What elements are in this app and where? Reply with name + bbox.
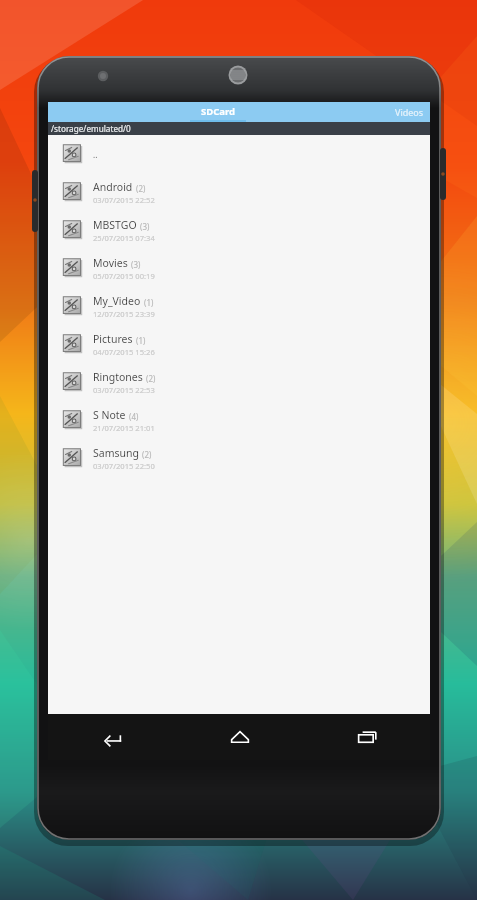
staticText: Samsung [93, 446, 139, 460]
staticText: My_Video [93, 294, 141, 308]
other: Folder [62, 181, 84, 203]
staticText: Pictures [93, 332, 133, 346]
button[interactable]: Folder [48, 211, 430, 249]
other: Folder [62, 295, 84, 317]
other: Folder [62, 371, 84, 393]
staticText: (2) [136, 183, 146, 194]
staticText: SDCard [201, 105, 236, 118]
staticText: (1) [136, 335, 146, 346]
other: Folder [62, 143, 84, 165]
button[interactable]: Home [176, 714, 303, 760]
button[interactable]: Folder [48, 135, 430, 173]
other: Folder [62, 333, 84, 355]
staticText: 25/07/2015 07:34 [93, 233, 155, 243]
staticText: Android [93, 180, 133, 194]
staticText: (4) [129, 411, 139, 422]
staticText: (2) [142, 449, 152, 460]
staticText: /storage/emulated/0 [51, 123, 131, 134]
staticText: 03/07/2015 22:53 [93, 385, 155, 395]
button[interactable]: Folder [48, 249, 430, 287]
button[interactable]: Folder [48, 325, 430, 363]
staticText: Movies [93, 256, 128, 270]
staticText: Ringtones [93, 370, 143, 384]
button[interactable]: Folder [48, 287, 430, 325]
staticText: Videos [395, 106, 424, 118]
button[interactable]: Folder [48, 439, 430, 477]
button[interactable]: Recents [303, 714, 430, 760]
staticText: (2) [146, 373, 156, 384]
button[interactable]: /storage/emulated/0 [48, 122, 430, 135]
other: Folder [62, 257, 84, 279]
staticText: S Note [93, 408, 126, 422]
button[interactable]: Folder [48, 173, 430, 211]
button[interactable]: SDCard [48, 102, 388, 122]
staticText: 03/07/2015 22:52 [93, 195, 155, 205]
staticText: (3) [140, 221, 150, 232]
other: Folder [62, 447, 84, 469]
staticText: 03/07/2015 22:50 [93, 461, 155, 471]
staticText: 12/07/2015 23:39 [93, 309, 155, 319]
other: Folder [62, 219, 84, 241]
button[interactable]: Folder [48, 363, 430, 401]
staticText: (1) [144, 297, 154, 308]
button[interactable]: Videos [388, 102, 430, 122]
staticText: MBSTGO [93, 218, 137, 232]
staticText: .. [93, 149, 98, 160]
staticText: (3) [131, 259, 141, 270]
button[interactable]: Folder [48, 401, 430, 439]
staticText: 04/07/2015 15:26 [93, 347, 155, 357]
other: Folder [62, 409, 84, 431]
button[interactable]: Back [48, 714, 176, 760]
staticText: 21/07/2015 21:01 [93, 423, 155, 433]
staticText: 05/07/2015 00:19 [93, 271, 155, 281]
